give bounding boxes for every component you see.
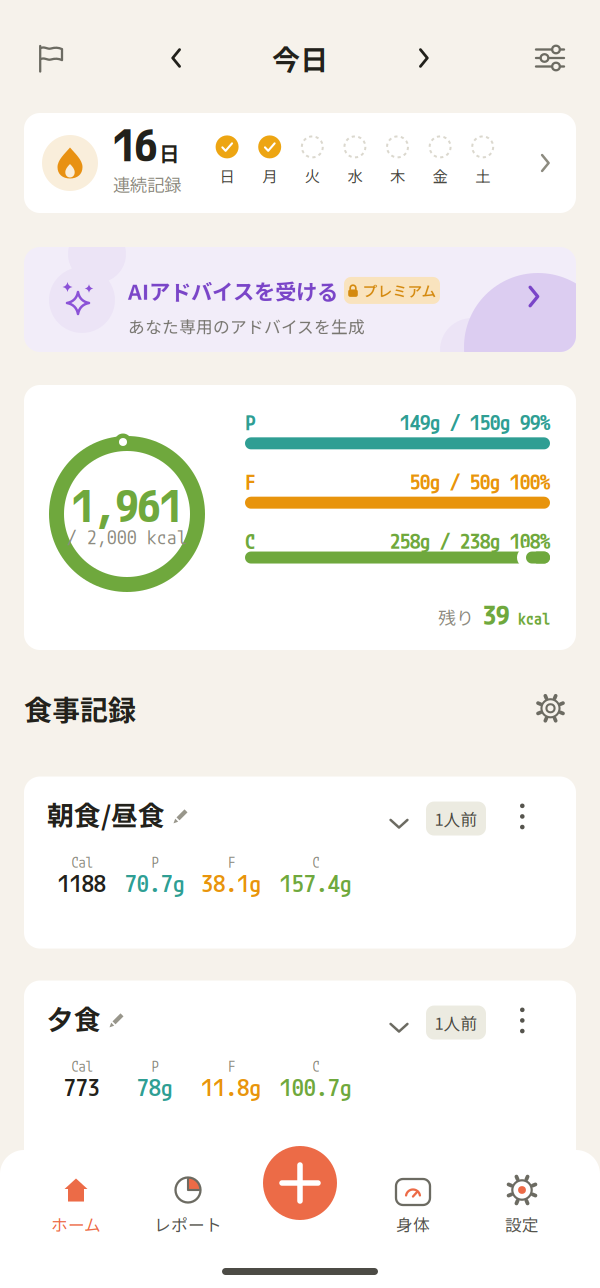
- staticText: 1,961: [72, 478, 182, 532]
- staticText: あなた専用のアドバイスを生成: [128, 314, 365, 338]
- staticText: 夕食: [47, 998, 101, 1037]
- staticText: 残り: [438, 604, 474, 630]
- staticText: 土: [475, 164, 490, 187]
- staticText: C: [245, 528, 256, 554]
- staticText: Cal: [71, 1057, 92, 1075]
- staticText: kcal: [518, 609, 550, 628]
- staticText: 50g / 50g 100%: [410, 469, 550, 494]
- staticText: 1188: [58, 869, 106, 897]
- staticText: 今日: [272, 38, 328, 78]
- staticText: 16: [113, 117, 157, 172]
- staticText: 設定: [505, 1212, 539, 1236]
- staticText: 木: [390, 164, 405, 187]
- staticText: ホーム: [51, 1212, 101, 1236]
- staticText: 金: [433, 164, 448, 187]
- staticText: 朝食/昼食: [47, 794, 165, 833]
- staticText: F: [228, 1057, 235, 1075]
- staticText: 月: [262, 164, 277, 187]
- staticText: 1人前: [434, 806, 477, 831]
- staticText: レポート: [154, 1212, 222, 1236]
- staticText: P: [151, 853, 158, 871]
- staticText: 身体: [396, 1212, 430, 1236]
- staticText: プレミアム: [362, 280, 436, 301]
- staticText: 火: [305, 164, 320, 187]
- staticText: C: [312, 853, 319, 871]
- staticText: P: [245, 409, 256, 435]
- staticText: F: [228, 853, 235, 871]
- staticText: 78g: [137, 1073, 173, 1101]
- staticText: F: [245, 468, 256, 495]
- staticText: 日: [159, 138, 179, 167]
- staticText: 100.7g: [280, 1073, 352, 1101]
- staticText: 773: [64, 1073, 100, 1101]
- staticText: 149g / 150g 99%: [400, 409, 550, 435]
- staticText: AIアドバイスを受ける: [128, 275, 338, 306]
- staticText: 70.7g: [125, 869, 185, 897]
- staticText: 1人前: [434, 1010, 477, 1035]
- staticText: Cal: [71, 853, 92, 871]
- staticText: 11.8g: [201, 1073, 261, 1101]
- staticText: 258g / 238g 108%: [390, 528, 550, 554]
- staticText: / 2,000 kcal: [67, 525, 187, 549]
- staticText: 38.1g: [201, 869, 261, 897]
- staticText: 食事記録: [24, 688, 136, 728]
- staticText: 157.4g: [280, 869, 352, 897]
- staticText: 39: [483, 598, 509, 631]
- staticText: 連続記録: [113, 172, 181, 197]
- staticText: P: [151, 1057, 158, 1075]
- staticText: 水: [347, 164, 362, 187]
- staticText: C: [312, 1057, 319, 1075]
- staticText: 日: [220, 164, 235, 187]
